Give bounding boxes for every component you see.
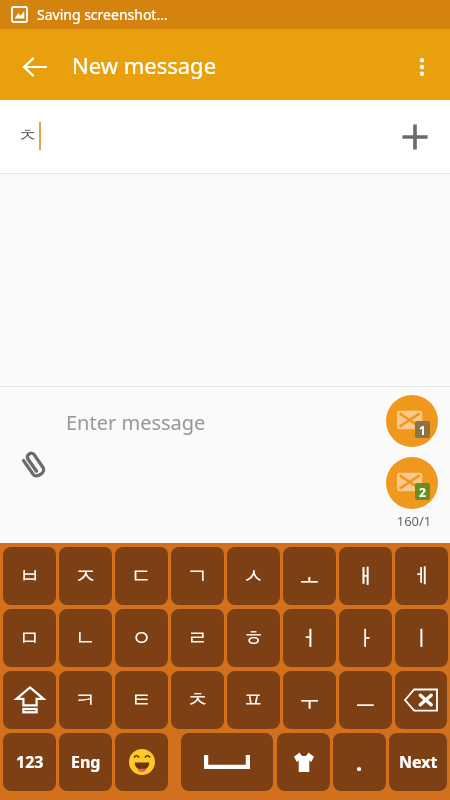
button[interactable]: Send with SIM 1 <box>386 395 438 447</box>
button[interactable]: ㅡ <box>339 671 392 729</box>
button[interactable]: Back <box>14 46 56 88</box>
staticText: New message <box>72 50 217 80</box>
staticText: ㅔ <box>411 563 432 589</box>
staticText: ㅓ <box>299 625 320 651</box>
button[interactable]: ㅐ <box>339 547 392 605</box>
staticText: ㅂ <box>19 563 40 589</box>
staticText: ㅣ <box>411 625 432 651</box>
staticText: ㅁ <box>19 625 40 651</box>
button[interactable]: ㄷ <box>115 547 168 605</box>
button[interactable]: More options <box>400 45 444 89</box>
button[interactable]: ㅇ <box>115 609 168 667</box>
button[interactable]: ㅋ <box>59 671 112 729</box>
staticText: ㅈ <box>75 563 96 589</box>
button[interactable]: Space <box>181 733 273 791</box>
staticText: ㅜ <box>299 687 320 713</box>
staticText: ㅗ <box>299 563 320 589</box>
button[interactable]: Attach <box>10 441 58 489</box>
staticText: ㅊ <box>18 124 37 148</box>
staticText: ㅐ <box>355 563 376 589</box>
button[interactable]: ㄹ <box>171 609 224 667</box>
button[interactable]: ㅏ <box>339 609 392 667</box>
staticText: ㅌ <box>131 687 152 713</box>
staticText: 1 <box>419 422 426 438</box>
staticText: ㄷ <box>131 563 152 589</box>
staticText: Next <box>399 751 438 773</box>
staticText: ㅏ <box>355 625 376 651</box>
staticText: ㅋ <box>75 687 96 713</box>
staticText: ㅇ <box>131 625 152 651</box>
staticText: ㄴ <box>75 625 96 651</box>
button[interactable]: Sticker <box>277 733 330 791</box>
button[interactable]: . <box>333 733 386 791</box>
button[interactable]: ㄴ <box>59 609 112 667</box>
button[interactable]: Next <box>389 733 447 791</box>
staticText: . <box>356 747 363 777</box>
button[interactable]: ㅜ <box>283 671 336 729</box>
button[interactable]: Add recipient <box>392 114 438 160</box>
staticText: 123 <box>16 751 44 773</box>
button[interactable]: Emoji <box>115 733 168 791</box>
button[interactable]: ㅓ <box>283 609 336 667</box>
button[interactable]: ㄱ <box>171 547 224 605</box>
button[interactable]: ㅗ <box>283 547 336 605</box>
button[interactable]: Shift <box>3 671 56 729</box>
button[interactable]: Send with SIM 2 <box>386 457 438 509</box>
button[interactable]: ㅁ <box>3 609 56 667</box>
button[interactable]: Backspace <box>395 671 447 729</box>
button[interactable]: ㅌ <box>115 671 168 729</box>
button[interactable]: 123 <box>3 733 56 791</box>
staticText: ㄹ <box>187 625 208 651</box>
staticText: ㅍ <box>243 687 264 713</box>
button[interactable]: ㅣ <box>395 609 448 667</box>
button[interactable]: Eng <box>59 733 112 791</box>
button[interactable]: ㅍ <box>227 671 280 729</box>
staticText: ㅡ <box>355 687 376 713</box>
staticText: 160/1 <box>389 512 439 530</box>
staticText: Eng <box>71 751 101 773</box>
staticText: Saving screenshot… <box>37 5 168 24</box>
button[interactable]: ㅔ <box>395 547 448 605</box>
staticText: 2 <box>419 484 426 500</box>
button[interactable]: ㅈ <box>59 547 112 605</box>
staticText: ㅅ <box>243 563 264 589</box>
button[interactable]: ㅅ <box>227 547 280 605</box>
staticText: ㅊ <box>187 687 208 713</box>
button[interactable]: ㅂ <box>3 547 56 605</box>
button[interactable]: ㅊ <box>171 671 224 729</box>
staticText: ㄱ <box>187 563 208 589</box>
staticText: ㅎ <box>243 625 264 651</box>
staticText: Enter message <box>66 409 206 436</box>
button[interactable]: ㅎ <box>227 609 280 667</box>
